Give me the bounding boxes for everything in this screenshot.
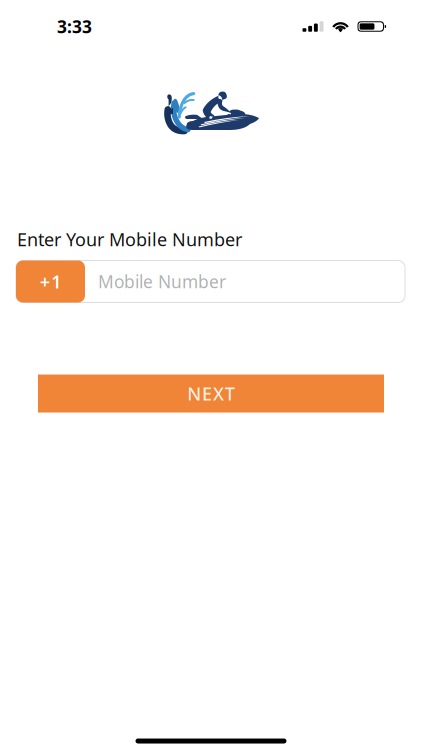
- staticText: Enter Your Mobile Number: [17, 227, 242, 251]
- button[interactable]: +1: [16, 260, 85, 302]
- staticText: NEXT: [187, 381, 235, 406]
- staticText: 3:33: [57, 15, 92, 38]
- staticText: +1: [40, 269, 61, 294]
- button[interactable]: NEXT: [38, 374, 384, 412]
- staticText: Mobile Number: [98, 270, 226, 293]
